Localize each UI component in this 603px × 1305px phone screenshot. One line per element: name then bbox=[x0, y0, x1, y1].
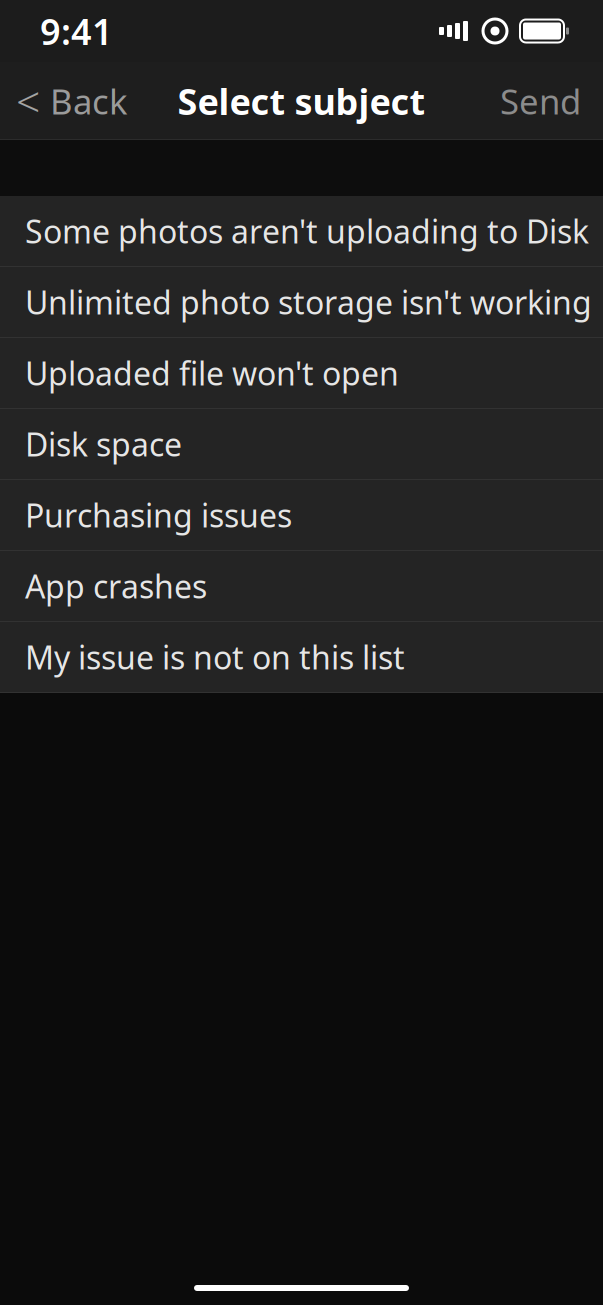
staticText: < bbox=[16, 73, 40, 129]
staticText: 9:41 bbox=[40, 7, 113, 55]
button[interactable]: Unlimited photo storage isn't working bbox=[0, 267, 603, 338]
button[interactable]: App crashes bbox=[0, 551, 603, 622]
staticText: Back bbox=[50, 78, 128, 124]
staticText: Send bbox=[500, 78, 581, 124]
button[interactable]: Uploaded file won't open bbox=[0, 338, 603, 409]
staticText: Unlimited photo storage isn't working bbox=[25, 281, 592, 323]
staticText: Purchasing issues bbox=[25, 494, 292, 536]
staticText: My issue is not on this list bbox=[25, 636, 405, 678]
button[interactable]: Send bbox=[500, 66, 603, 136]
button[interactable]: < bbox=[0, 61, 128, 141]
staticText: Select subject bbox=[177, 77, 425, 125]
button[interactable]: My issue is not on this list bbox=[0, 622, 603, 693]
staticText: Uploaded file won't open bbox=[25, 352, 399, 394]
button[interactable]: Purchasing issues bbox=[0, 480, 603, 551]
staticText: Some photos aren't uploading to Disk bbox=[25, 210, 589, 252]
button[interactable]: Disk space bbox=[0, 409, 603, 480]
staticText: App crashes bbox=[25, 565, 207, 607]
staticText: Disk space bbox=[25, 423, 182, 465]
button[interactable]: Some photos aren't uploading to Disk bbox=[0, 196, 603, 267]
